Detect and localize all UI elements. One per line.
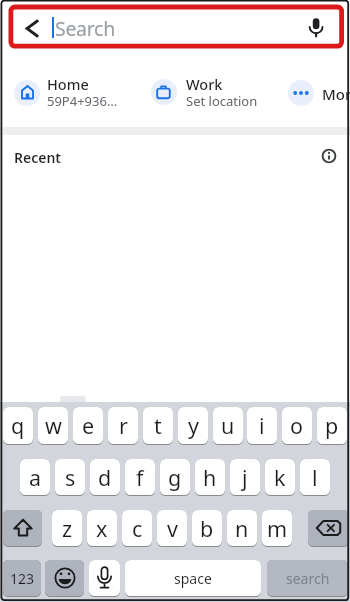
staticText: q [11,411,25,440]
button[interactable]: v [157,510,187,547]
button[interactable] [147,72,272,112]
staticText: w [45,411,62,440]
button[interactable]: j [230,459,260,496]
staticText: v [167,514,178,543]
button[interactable]: r [108,407,138,445]
button[interactable]: z [52,510,82,547]
staticText: m [267,514,288,543]
button[interactable]: a [20,459,50,496]
staticText: z [62,514,73,543]
staticText: Work [186,74,223,94]
button[interactable]: c [122,510,152,547]
staticText: More [322,84,350,104]
staticText: l [312,463,318,492]
button[interactable]: space [125,560,261,597]
button[interactable]: 123 [3,560,41,597]
button[interactable]: g [160,459,190,496]
button[interactable] [0,140,350,170]
staticText: t [154,411,162,440]
staticText: d [98,463,112,492]
staticText: 59P4+936… [47,92,118,110]
staticText: x [96,514,108,543]
button[interactable]: m [262,510,292,547]
button[interactable]: f [125,459,155,496]
staticText: b [200,514,214,543]
button[interactable]: n [227,510,257,547]
button[interactable]: k [265,459,295,496]
button[interactable]: w [38,407,68,445]
staticText: p [325,411,339,440]
staticText: i [259,411,265,440]
staticText: n [235,514,249,543]
button[interactable]: h [195,459,225,496]
button[interactable]: p [317,407,347,445]
staticText: search [286,569,330,588]
button[interactable]: o [282,407,312,445]
button[interactable] [10,72,135,112]
staticText: g [168,463,182,492]
staticText: r [119,411,128,440]
button[interactable]: x [87,510,117,547]
button[interactable] [45,560,84,597]
staticText: f [136,463,144,492]
button[interactable] [308,510,349,547]
staticText: Set location [186,92,258,110]
staticText: Home [47,74,89,94]
button[interactable]: e [73,407,103,445]
button[interactable] [321,148,337,164]
button[interactable]: u [213,407,243,445]
staticText: c [132,514,143,543]
staticText: s [65,463,76,492]
staticText: h [203,463,217,492]
button[interactable] [284,72,350,112]
staticText: 123 [10,569,35,588]
staticText: a [29,463,42,492]
staticText: space [174,569,212,588]
button[interactable]: search [267,560,348,597]
staticText: j [242,463,248,492]
button[interactable] [3,510,42,547]
staticText: Recent [14,148,62,167]
staticText: y [188,411,199,440]
button[interactable]: l [300,459,330,496]
staticText: u [221,411,235,440]
button[interactable]: b [192,510,222,547]
button[interactable]: y [178,407,208,445]
button[interactable]: t [143,407,173,445]
staticText: k [274,463,286,492]
staticText: e [82,411,95,440]
button[interactable] [5,5,345,50]
staticText: o [290,411,304,440]
button[interactable]: q [3,407,33,445]
button[interactable]: d [90,459,120,496]
button[interactable]: i [247,407,277,445]
staticText: Search [55,15,115,42]
button[interactable] [89,560,120,597]
button[interactable]: s [55,459,85,496]
